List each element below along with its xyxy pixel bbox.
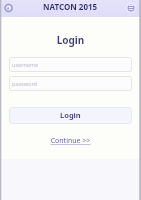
staticText: Login (60, 110, 81, 120)
staticText: Login (0, 33, 141, 47)
staticText: NATCON 2015 (43, 1, 98, 12)
button[interactable]: Back (2, 1, 16, 15)
button[interactable]: Menu (124, 1, 138, 15)
staticText: username (12, 61, 39, 68)
button[interactable]: Login (9, 107, 132, 124)
staticText: password (12, 80, 37, 87)
button[interactable]: password (9, 76, 132, 91)
button[interactable]: Continue >> (0, 136, 141, 146)
button[interactable]: username (9, 57, 132, 72)
